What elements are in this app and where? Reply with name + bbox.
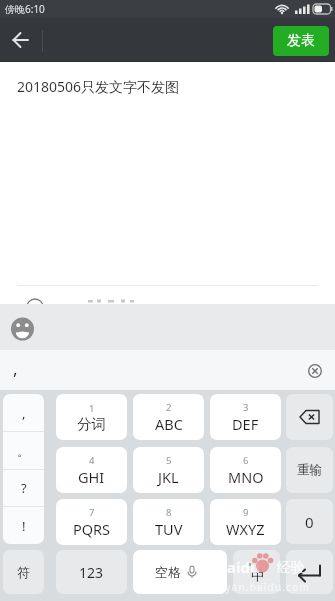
- staticText: DEF: [232, 414, 259, 434]
- staticText: 傍晚6:10: [5, 2, 45, 16]
- staticText: 0: [305, 512, 314, 532]
- button[interactable]: 9: [210, 499, 281, 545]
- staticText: ,: [13, 357, 18, 380]
- button[interactable]: 0: [286, 499, 333, 544]
- staticText: 3: [243, 401, 249, 414]
- button[interactable]: 3: [210, 394, 281, 440]
- staticText: 2: [166, 401, 172, 414]
- button[interactable]: 2: [133, 394, 204, 440]
- staticText: 20180506只发文字不发图: [17, 77, 180, 96]
- staticText: 空格: [155, 564, 181, 580]
- staticText: 中: [251, 567, 265, 584]
- staticText: 9: [243, 506, 249, 519]
- staticText: 。: [17, 443, 30, 459]
- button[interactable]: 发表: [273, 26, 329, 56]
- staticText: 4: [89, 454, 95, 467]
- staticText: !: [22, 517, 26, 535]
- button[interactable]: [0, 286, 335, 304]
- button[interactable]: [6, 310, 40, 344]
- button[interactable]: 7: [56, 499, 127, 545]
- button[interactable]: 5: [133, 447, 204, 493]
- button[interactable]: 符: [3, 550, 44, 594]
- staticText: PQRS: [73, 519, 111, 539]
- staticText: WXYZ: [226, 519, 265, 539]
- button[interactable]: 8: [133, 499, 204, 545]
- button[interactable]: 重输: [286, 447, 333, 493]
- button[interactable]: 20180506只发文字不发图: [0, 62, 335, 285]
- staticText: ABC: [155, 414, 183, 434]
- staticText: ?: [21, 479, 27, 497]
- staticText: 发表: [287, 32, 315, 50]
- button[interactable]: 4: [56, 447, 127, 493]
- staticText: GHI: [78, 467, 105, 487]
- staticText: 重输: [297, 462, 322, 478]
- staticText: ,: [22, 404, 26, 422]
- button[interactable]: ,: [3, 394, 44, 544]
- button[interactable]: [286, 394, 333, 440]
- staticText: JKL: [158, 467, 179, 487]
- staticText: 8: [166, 506, 172, 519]
- staticText: jingyan.baidu.com: [203, 580, 311, 594]
- staticText: MNO: [228, 467, 264, 487]
- staticText: 6: [243, 454, 249, 467]
- button[interactable]: 空格: [133, 550, 227, 594]
- button[interactable]: [286, 550, 333, 594]
- staticText: 123: [79, 563, 104, 582]
- staticText: 分词: [77, 415, 106, 433]
- button[interactable]: ,: [0, 350, 40, 390]
- staticText: 符: [17, 564, 30, 580]
- button[interactable]: 123: [56, 550, 127, 594]
- button[interactable]: [300, 356, 330, 386]
- staticText: 7: [89, 506, 95, 519]
- button[interactable]: 6: [210, 447, 281, 493]
- button[interactable]: 中: [233, 550, 280, 594]
- button[interactable]: 1: [56, 394, 127, 440]
- staticText: 5: [166, 454, 172, 467]
- staticText: TUV: [155, 519, 183, 539]
- button[interactable]: [0, 18, 44, 62]
- staticText: 经验: [277, 559, 305, 577]
- staticText: Baidu: [217, 557, 260, 577]
- staticText: 1: [89, 402, 95, 415]
